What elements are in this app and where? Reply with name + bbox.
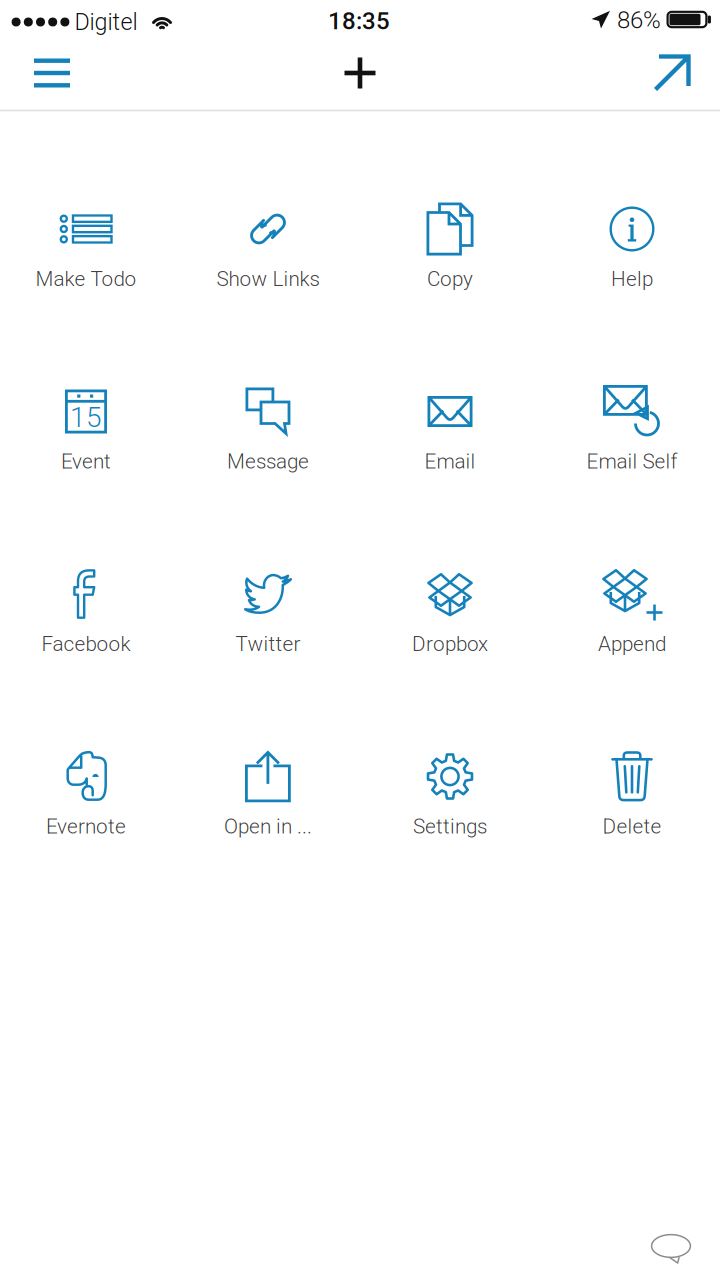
button[interactable]: Share	[632, 40, 712, 106]
staticText: Copy	[427, 267, 473, 291]
staticText: Open in ...	[224, 814, 312, 839]
staticText: Append	[598, 632, 666, 656]
button[interactable]: Copy	[362, 149, 538, 309]
staticText: 86%	[617, 6, 661, 34]
staticText: Facebook	[41, 632, 130, 656]
staticText: Email Self	[586, 449, 677, 474]
button[interactable]: Twitter	[180, 514, 356, 674]
button[interactable]: Show Links	[180, 149, 356, 309]
button[interactable]: 15	[0, 331, 174, 491]
staticText: 18:35	[328, 7, 390, 35]
button[interactable]: Menu	[10, 40, 94, 106]
staticText: Digitel	[74, 8, 137, 36]
button[interactable]: Add	[320, 40, 400, 106]
staticText: Settings	[413, 814, 487, 839]
button[interactable]: Dropbox	[362, 514, 538, 674]
button[interactable]: Make Todo	[0, 149, 174, 309]
button[interactable]: Delete	[544, 696, 720, 856]
button[interactable]: Evernote	[0, 696, 174, 856]
staticText: Help	[611, 267, 653, 291]
button[interactable]: Email	[362, 331, 538, 491]
button[interactable]: Settings	[362, 696, 538, 856]
staticText: 15	[70, 401, 102, 434]
staticText: Evernote	[46, 814, 126, 839]
button[interactable]: Message	[180, 331, 356, 491]
button[interactable]: Open in ...	[180, 696, 356, 856]
button[interactable]: Help chat	[642, 1224, 716, 1280]
staticText: Twitter	[235, 632, 300, 656]
button[interactable]: Append	[544, 514, 720, 674]
staticText: Show Links	[216, 267, 319, 291]
staticText: Dropbox	[412, 632, 488, 656]
staticText: Make Todo	[35, 267, 136, 291]
button[interactable]: Email Self	[544, 331, 720, 491]
staticText: Message	[227, 449, 309, 474]
button[interactable]: Help	[544, 149, 720, 309]
button[interactable]: Facebook	[0, 514, 174, 674]
staticText: Delete	[602, 814, 661, 839]
staticText: Email	[424, 449, 475, 474]
staticText: Event	[61, 449, 111, 474]
